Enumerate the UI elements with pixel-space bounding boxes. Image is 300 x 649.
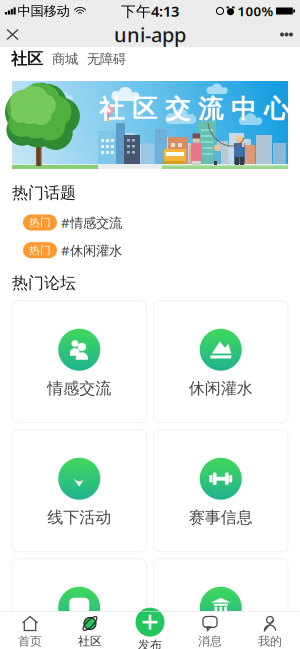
staticText: 文化古迹 xyxy=(189,637,253,649)
staticText: 中 xyxy=(231,93,256,124)
staticText: 热门 xyxy=(29,244,51,257)
button[interactable]: 热门 xyxy=(12,241,288,259)
staticText: #休闲灌水 xyxy=(61,241,122,259)
staticText: 休闲灌水 xyxy=(189,379,253,398)
staticText: 商城 xyxy=(52,51,78,67)
staticText: 赛事信息 xyxy=(189,508,253,527)
button[interactable]: 社区 xyxy=(60,611,120,649)
button[interactable]: 我的 xyxy=(240,611,300,649)
button[interactable]: 首页 xyxy=(0,611,60,649)
staticText: 消息 xyxy=(198,634,222,649)
staticText: 热门话题 xyxy=(12,183,76,203)
staticText: 同城交友 xyxy=(47,637,111,649)
staticText: 心 xyxy=(264,93,289,124)
staticText: 100% xyxy=(237,2,273,20)
button[interactable]: 线下活动 xyxy=(12,430,146,552)
staticText: 无障碍 xyxy=(87,51,126,67)
button[interactable]: 文化古迹 xyxy=(153,559,288,649)
button[interactable]: 赛事信息 xyxy=(153,430,288,552)
staticText: 社 xyxy=(99,93,124,124)
staticText: 我的 xyxy=(258,634,282,649)
staticText: 热门论坛 xyxy=(12,273,76,293)
staticText: #情感交流 xyxy=(61,214,122,231)
staticText: 区 xyxy=(132,93,157,124)
button[interactable]: 消息 xyxy=(180,611,240,649)
staticText: 交 xyxy=(165,93,190,124)
staticText: 下午4:13 xyxy=(121,1,179,21)
button[interactable]: More xyxy=(273,22,300,46)
staticText: 发布 xyxy=(138,638,162,649)
button[interactable]: 同城交友 xyxy=(12,559,146,649)
button[interactable]: 休闲灌水 xyxy=(153,301,288,423)
staticText: 社区 xyxy=(11,49,43,69)
staticText: 首页 xyxy=(18,634,42,649)
staticText: 线下活动 xyxy=(47,508,111,527)
staticText: 热门 xyxy=(29,216,51,229)
button[interactable]: 热门 xyxy=(12,214,288,231)
staticText: 社区 xyxy=(78,634,102,649)
staticText: uni-app xyxy=(114,21,186,48)
staticText: 流 xyxy=(198,93,223,124)
button[interactable]: Close xyxy=(0,22,25,46)
button[interactable]: 商城 xyxy=(52,51,87,67)
button[interactable]: 社区 xyxy=(11,49,52,69)
staticText: 情感交流 xyxy=(47,379,111,398)
button[interactable]: 无障碍 xyxy=(87,51,126,67)
button[interactable]: 发布 xyxy=(120,611,180,649)
button[interactable]: 情感交流 xyxy=(12,301,146,423)
staticText: 中国移动 xyxy=(17,3,69,19)
